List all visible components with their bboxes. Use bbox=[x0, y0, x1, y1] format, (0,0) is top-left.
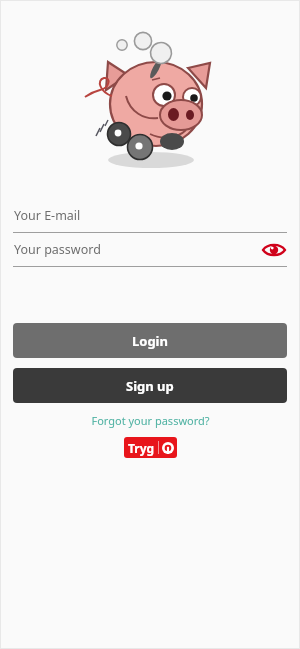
staticText: Your password bbox=[14, 241, 101, 258]
staticText: Login bbox=[132, 332, 168, 350]
button[interactable]: Your E-mail bbox=[13, 198, 287, 232]
button[interactable]: Show password bbox=[261, 237, 287, 263]
staticText: Sign up bbox=[126, 377, 174, 395]
button[interactable]: Login bbox=[13, 323, 287, 358]
staticText: Tryg bbox=[128, 440, 155, 456]
button[interactable]: Your password bbox=[13, 233, 287, 266]
button[interactable]: Tryg logo bbox=[124, 437, 177, 458]
button[interactable]: Forgot your password? bbox=[0, 411, 300, 429]
button[interactable]: Sign up bbox=[13, 368, 287, 403]
staticText: Forgot your password? bbox=[91, 413, 210, 428]
staticText: Your E-mail bbox=[14, 207, 81, 224]
